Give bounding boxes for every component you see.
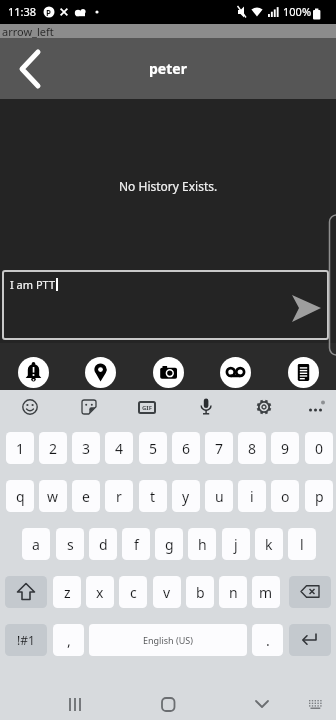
staticText: w [47, 487, 59, 506]
staticText: . [266, 631, 270, 650]
staticText: P [46, 7, 51, 18]
button[interactable] [18, 357, 49, 388]
staticText: x [96, 583, 104, 602]
button[interactable]: f [122, 528, 150, 560]
button[interactable]: English (US) [89, 624, 247, 656]
staticText: 11:38 [8, 4, 37, 19]
button[interactable]: 9 [271, 432, 299, 464]
button[interactable]: i [238, 480, 266, 512]
button[interactable]: h [188, 528, 216, 560]
button[interactable]: , [53, 624, 84, 656]
staticText: o [281, 487, 290, 506]
button[interactable]: p [305, 480, 333, 512]
button[interactable]: 7 [205, 432, 233, 464]
staticText: z [64, 583, 71, 602]
button[interactable]: j [222, 528, 250, 560]
button[interactable]: 2 [39, 432, 67, 464]
button[interactable]: o [271, 480, 299, 512]
staticText: !#1 [17, 632, 35, 648]
button[interactable]: v [153, 576, 181, 608]
staticText: b [196, 583, 205, 602]
button[interactable] [153, 357, 184, 388]
button[interactable]: e [72, 480, 100, 512]
button[interactable]: d [89, 528, 117, 560]
staticText: v [163, 583, 171, 602]
staticText: I am PTT [10, 277, 56, 292]
button[interactable]: I am PTT [2, 270, 329, 340]
button[interactable]: y [172, 480, 200, 512]
staticText: m [259, 583, 273, 602]
staticText: 6 [182, 439, 191, 458]
staticText: , [67, 631, 71, 650]
button[interactable]: r [105, 480, 133, 512]
staticText: e [82, 487, 90, 506]
button[interactable]: u [205, 480, 233, 512]
staticText: 1 [16, 439, 25, 458]
staticText: No History Exists. [119, 178, 218, 194]
button[interactable]: w [39, 480, 67, 512]
button[interactable]: t [139, 480, 167, 512]
button[interactable]: b [186, 576, 214, 608]
button[interactable] [5, 576, 47, 608]
staticText: u [215, 487, 224, 506]
staticText: h [198, 535, 207, 554]
button[interactable] [16, 393, 44, 421]
button[interactable]: !#1 [5, 624, 47, 656]
button[interactable]: g [155, 528, 183, 560]
staticText: 8 [248, 439, 257, 458]
button[interactable] [289, 576, 331, 608]
staticText: c [130, 583, 137, 602]
staticText: 0 [315, 439, 324, 458]
button[interactable] [192, 393, 220, 421]
staticText: 5 [149, 439, 158, 458]
staticText: 7 [215, 439, 224, 458]
button[interactable]: k [255, 528, 283, 560]
button[interactable]: 5 [139, 432, 167, 464]
button[interactable]: 4 [105, 432, 133, 464]
button[interactable] [302, 393, 330, 421]
staticText: peter [149, 59, 187, 78]
staticText: y [182, 487, 190, 506]
button[interactable] [289, 624, 331, 656]
button[interactable] [75, 393, 103, 421]
staticText: t [150, 487, 156, 506]
staticText: d [99, 535, 108, 554]
staticText: GIF [142, 404, 152, 412]
button[interactable]: . [252, 624, 283, 656]
button[interactable]: l [288, 528, 316, 560]
staticText: i [250, 487, 254, 506]
button[interactable] [8, 50, 52, 88]
staticText: l [300, 535, 304, 554]
button[interactable] [40, 686, 126, 720]
button[interactable]: m [252, 576, 280, 608]
button[interactable]: 8 [238, 432, 266, 464]
button[interactable]: c [119, 576, 147, 608]
button[interactable]: q [6, 480, 34, 512]
staticText: English (US) [143, 634, 193, 646]
staticText: arrow_left [2, 24, 54, 38]
staticText: 2 [49, 439, 58, 458]
button[interactable] [126, 686, 213, 720]
button[interactable] [250, 393, 278, 421]
staticText: r [116, 487, 122, 506]
button[interactable]: s [56, 528, 84, 560]
button[interactable] [288, 357, 319, 388]
staticText: j [234, 535, 238, 554]
button[interactable]: n [219, 576, 247, 608]
button[interactable]: 6 [172, 432, 200, 464]
button[interactable] [213, 686, 300, 720]
staticText: s [67, 535, 74, 554]
button[interactable] [220, 357, 251, 388]
button[interactable]: z [53, 576, 81, 608]
staticText: f [134, 535, 139, 554]
button[interactable]: a [22, 528, 50, 560]
button[interactable] [85, 357, 116, 388]
staticText: 9 [281, 439, 290, 458]
button[interactable]: x [86, 576, 114, 608]
button[interactable]: 3 [72, 432, 100, 464]
button[interactable]: 0 [305, 432, 333, 464]
staticText: g [165, 535, 174, 554]
button[interactable]: 1 [6, 432, 34, 464]
button[interactable]: GIF [133, 393, 161, 421]
staticText: p [315, 487, 324, 506]
